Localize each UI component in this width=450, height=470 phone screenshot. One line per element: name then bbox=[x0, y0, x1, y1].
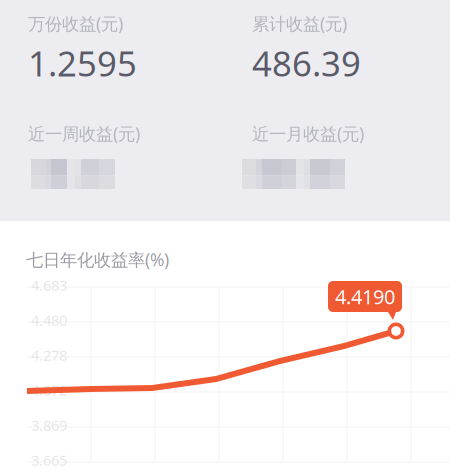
staticText: 486.39 bbox=[252, 40, 361, 86]
staticText: 4.480 bbox=[31, 310, 67, 330]
staticText: 3.869 bbox=[31, 415, 67, 435]
staticText: 近一月收益(元) bbox=[252, 122, 364, 145]
staticText: 3.665 bbox=[31, 450, 67, 470]
staticText: 七日年化收益率(%) bbox=[26, 248, 169, 271]
staticText: 4.072 bbox=[31, 380, 67, 400]
staticText: 1.2595 bbox=[28, 40, 137, 86]
staticText: 4.278 bbox=[31, 345, 67, 365]
staticText: 4.683 bbox=[31, 275, 67, 295]
staticText: 近一周收益(元) bbox=[28, 122, 140, 145]
staticText: 4.4190 bbox=[335, 283, 395, 310]
staticText: 累计收益(元) bbox=[252, 12, 347, 35]
staticText: 万份收益(元) bbox=[28, 12, 123, 35]
